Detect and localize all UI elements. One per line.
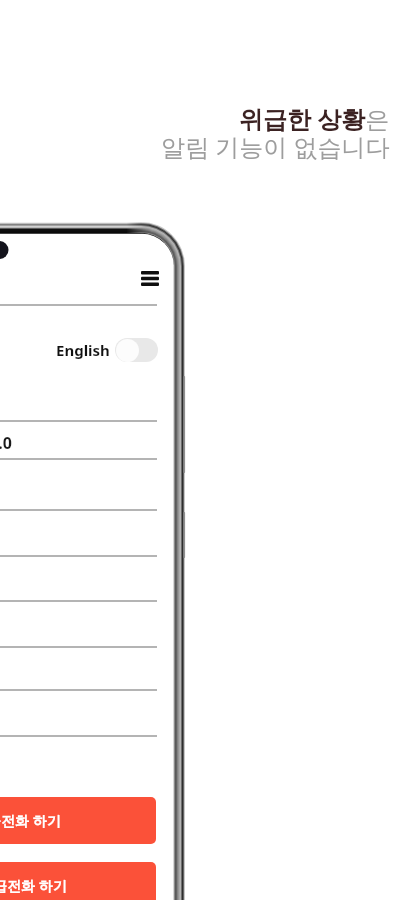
button[interactable]: 긴급전화 하기 [0,797,156,844]
button[interactable]: 응급전화 하기 [0,862,156,900]
staticText: English [56,340,110,360]
button[interactable]: Menu [134,262,166,294]
staticText: 알림 기능이 없습니다 [161,130,390,163]
staticText: 위급한 상황은 [239,102,390,135]
staticText: 응급전화 하기 [0,876,67,895]
button[interactable]: English [50,338,158,362]
staticText: 1.0 [0,432,12,454]
staticText: 긴급전화 하기 [0,811,61,830]
